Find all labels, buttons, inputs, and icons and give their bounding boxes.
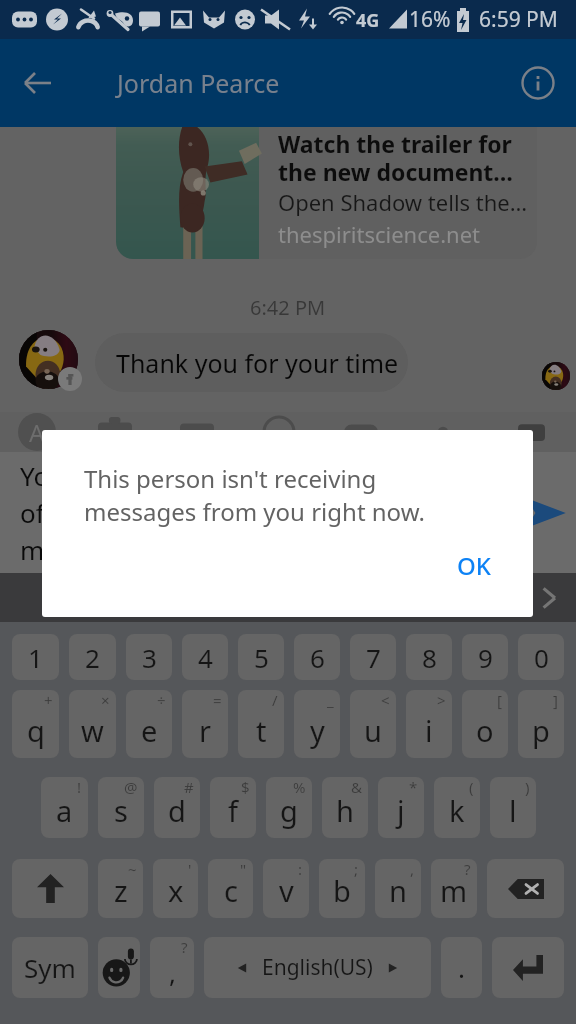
- staticText: Sym: [24, 950, 76, 985]
- button[interactable]: Conversation information: [512, 57, 564, 109]
- button[interactable]: ×: [69, 690, 116, 758]
- button[interactable]: 1: [12, 634, 59, 680]
- staticText: 6:42 PM: [250, 294, 326, 321]
- staticText: /: [272, 690, 278, 710]
- staticText: *: [409, 777, 418, 797]
- staticText: j: [397, 791, 405, 830]
- button[interactable]: <: [350, 690, 396, 758]
- staticText: 6: [310, 640, 325, 675]
- button[interactable]: #: [154, 777, 200, 838]
- button[interactable]: ": [208, 859, 253, 918]
- staticText: ': [188, 859, 192, 879]
- staticText: thespiritscience.net: [278, 219, 480, 249]
- button[interactable]: Sym: [12, 937, 88, 998]
- staticText: e: [141, 711, 158, 750]
- button[interactable]: More suggestions: [534, 583, 564, 613]
- button[interactable]: Thank you for your time: [95, 333, 408, 392]
- button[interactable]: ': [153, 859, 198, 918]
- button[interactable]: @: [98, 777, 144, 838]
- button[interactable]: Back: [10, 55, 66, 111]
- staticText: 9: [478, 640, 493, 675]
- button[interactable]: >: [406, 690, 452, 758]
- staticText: 8: [422, 640, 437, 675]
- button[interactable]: *: [378, 777, 424, 838]
- button[interactable]: 7: [350, 634, 396, 680]
- staticText: u: [364, 711, 382, 750]
- staticText: %: [293, 777, 306, 797]
- staticText: ,: [410, 859, 415, 879]
- button[interactable]: =: [182, 690, 228, 758]
- button[interactable]: 9: [462, 634, 508, 680]
- button[interactable]: ~: [98, 859, 143, 918]
- staticText: ): [525, 777, 530, 797]
- button[interactable]: 3: [126, 634, 172, 680]
- staticText: ×: [101, 690, 110, 710]
- staticText: ?: [464, 859, 471, 879]
- button[interactable]: ?: [431, 859, 477, 918]
- button[interactable]: 5: [238, 634, 284, 680]
- staticText: 0: [534, 640, 549, 675]
- staticText: [: [497, 690, 502, 710]
- staticText: o: [476, 711, 494, 750]
- staticText: !: [77, 777, 82, 797]
- button[interactable]: [: [462, 690, 508, 758]
- button[interactable]: ÷: [126, 690, 172, 758]
- button[interactable]: OK: [443, 539, 505, 592]
- staticText: 3: [142, 640, 157, 675]
- button[interactable]: &: [322, 777, 368, 838]
- staticText: 4: [198, 640, 213, 675]
- button[interactable]: +: [12, 690, 59, 758]
- button[interactable]: ]: [518, 690, 564, 758]
- button[interactable]: 4: [182, 634, 228, 680]
- button[interactable]: Watch the trailer for the new document…: [116, 127, 537, 259]
- button[interactable]: %: [266, 777, 312, 838]
- button[interactable]: 8: [406, 634, 452, 680]
- button[interactable]: (: [434, 777, 480, 838]
- button[interactable]: Change language, English (US): [204, 937, 431, 998]
- button[interactable]: Shift: [12, 859, 88, 918]
- staticText: This person isn't receiving messages fro…: [84, 462, 425, 528]
- staticText: You can't reply to of this conversation …: [20, 458, 261, 568]
- staticText: =: [213, 690, 222, 710]
- button[interactable]: /: [238, 690, 284, 758]
- staticText: :: [298, 859, 303, 879]
- staticText: (: [469, 777, 474, 797]
- staticText: r: [199, 711, 211, 750]
- staticText: &: [351, 777, 362, 797]
- button[interactable]: Backspace: [487, 859, 564, 918]
- button[interactable]: _: [294, 690, 340, 758]
- button[interactable]: 6: [294, 634, 340, 680]
- staticText: a: [56, 791, 73, 830]
- staticText: ?: [181, 937, 188, 957]
- staticText: +: [44, 690, 53, 710]
- button[interactable]: .: [441, 937, 482, 998]
- staticText: k: [449, 791, 465, 830]
- staticText: d: [168, 791, 186, 830]
- button[interactable]: Emoji and voice input: [98, 937, 140, 998]
- button[interactable]: ;: [319, 859, 365, 918]
- button[interactable]: ?: [150, 937, 194, 998]
- staticText: n: [389, 871, 407, 910]
- staticText: Jordan Pearce: [117, 66, 280, 100]
- button[interactable]: :: [263, 859, 309, 918]
- staticText: English(US): [262, 953, 373, 982]
- button[interactable]: $: [210, 777, 256, 838]
- button[interactable]: Enter: [492, 937, 564, 998]
- staticText: c: [224, 871, 238, 910]
- staticText: y: [310, 711, 325, 750]
- staticText: .: [458, 950, 465, 985]
- button[interactable]: 0: [518, 634, 564, 680]
- staticText: l: [509, 791, 517, 830]
- staticText: q: [27, 711, 45, 750]
- staticText: #: [184, 777, 194, 797]
- button[interactable]: ,: [375, 859, 421, 918]
- staticText: @: [124, 777, 138, 797]
- staticText: z: [114, 871, 128, 910]
- button[interactable]: ): [490, 777, 536, 838]
- staticText: Open Shadow tells the…: [278, 187, 528, 217]
- staticText: 1: [28, 640, 43, 675]
- staticText: ÷: [157, 690, 166, 710]
- button[interactable]: !: [41, 777, 88, 838]
- staticText: g: [280, 791, 298, 830]
- button[interactable]: 2: [69, 634, 116, 680]
